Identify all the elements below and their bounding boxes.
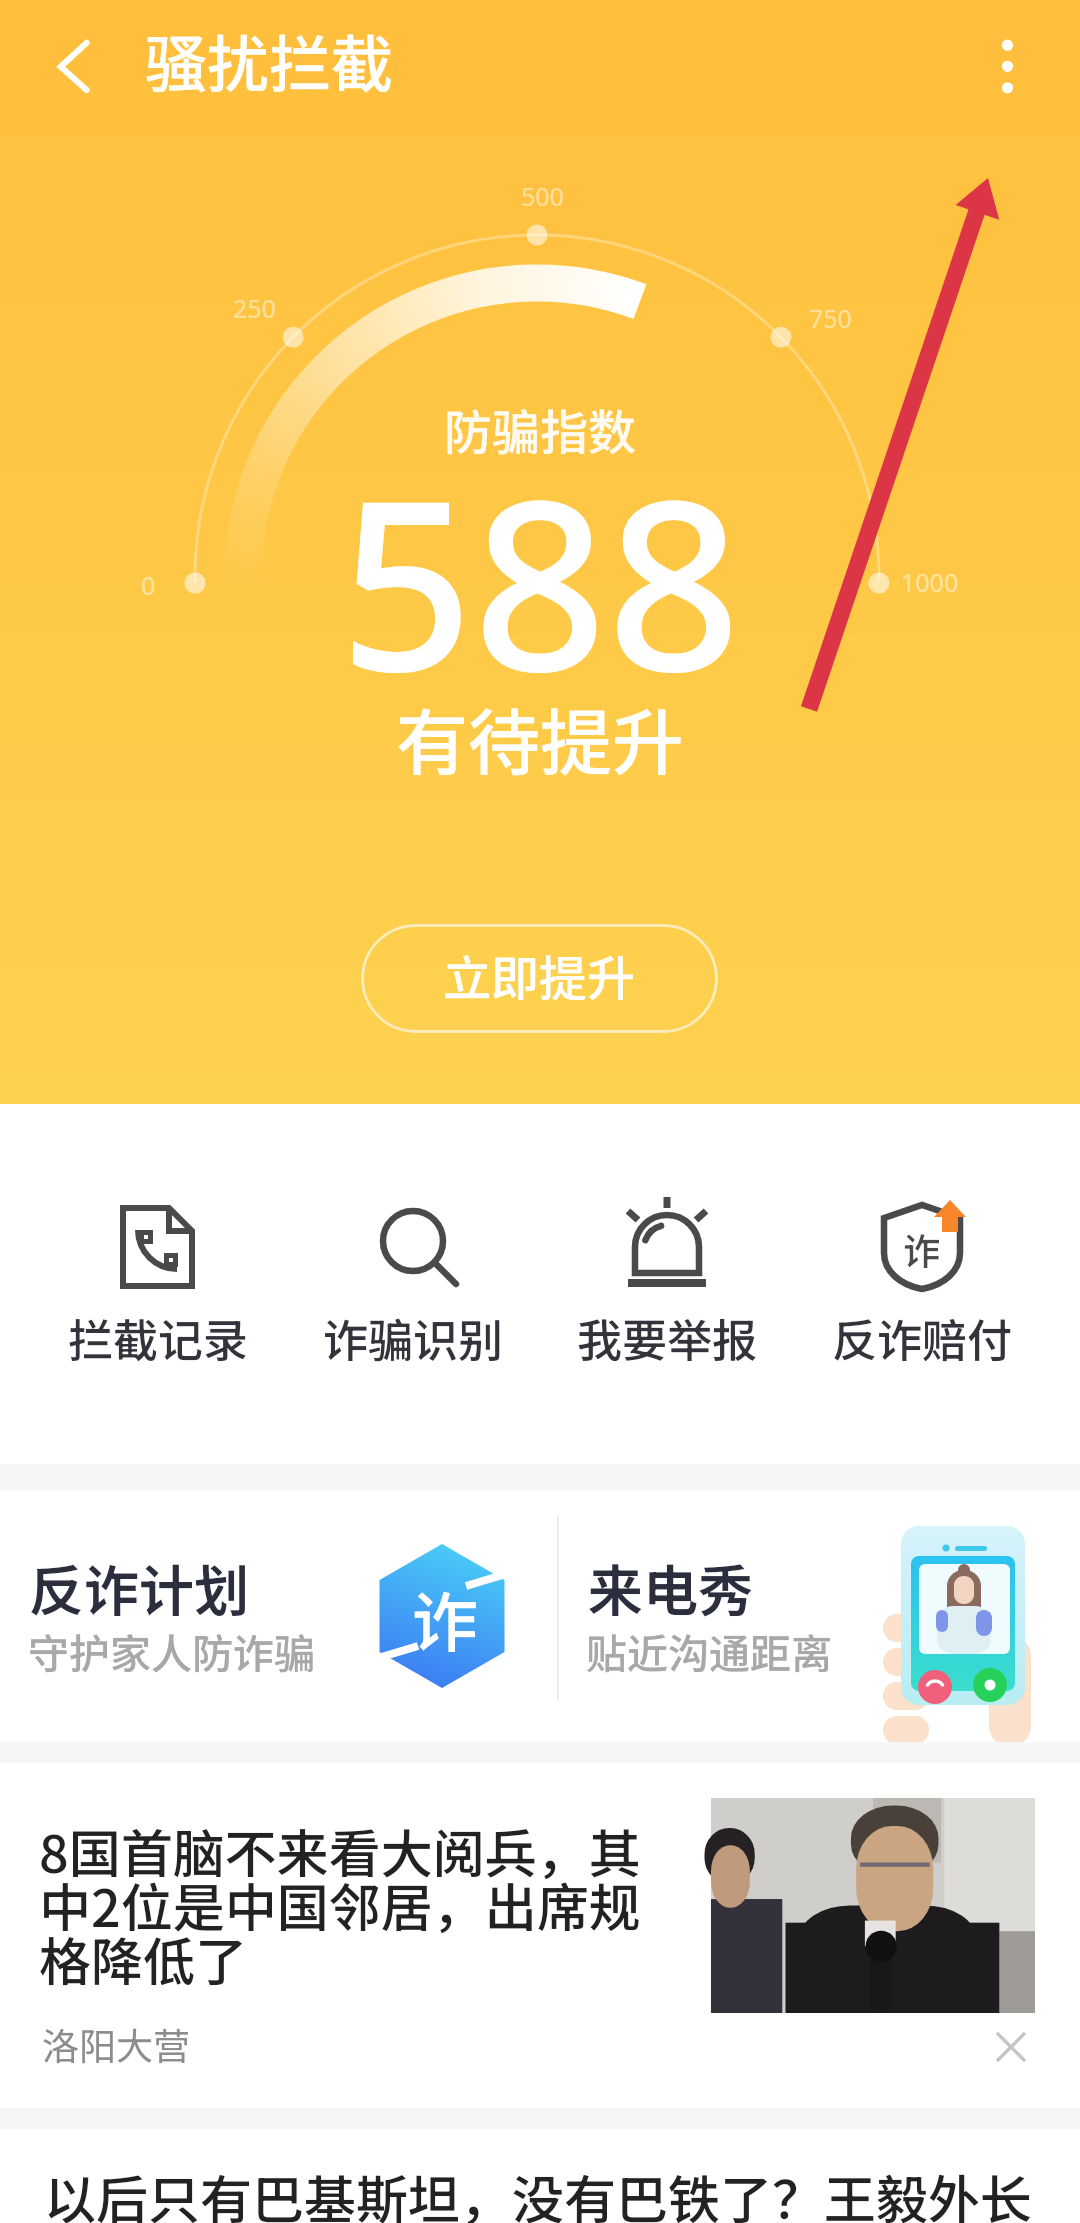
staticText: 反诈赔付 — [795, 1305, 1049, 1370]
button[interactable]: 来电秀 — [558, 1490, 1080, 1742]
staticText: 750 — [809, 301, 852, 335]
staticText: 格降低了 — [39, 1921, 248, 1996]
staticText: 诈骗识别 — [286, 1305, 540, 1370]
staticText: 有待提升 — [0, 685, 1080, 789]
button[interactable]: Close — [975, 2011, 1047, 2083]
button[interactable]: Back — [28, 19, 120, 111]
staticText: 贴近沟通距离 — [586, 1621, 832, 1680]
button[interactable]: 8国首脑不来看大阅兵，其 — [0, 1763, 1080, 2108]
button[interactable]: 诈骗识别 — [286, 1104, 540, 1464]
staticText: 我要举报 — [540, 1305, 794, 1370]
staticText: 中2位是中国邻居，出席规 — [39, 1867, 641, 1942]
staticText: 诈 — [903, 1222, 940, 1276]
button[interactable]: 立即提升 — [361, 924, 718, 1033]
staticText: 反诈计划 — [29, 1547, 250, 1627]
button[interactable]: 拦截记录 — [31, 1104, 285, 1464]
staticText: 500 — [521, 179, 564, 213]
staticText: 来电秀 — [588, 1547, 754, 1627]
staticText: 8国首脑不来看大阅兵，其 — [39, 1813, 641, 1888]
staticText: 250 — [233, 291, 276, 325]
staticText: 守护家人防诈骗 — [28, 1621, 315, 1680]
staticText: 拦截记录 — [31, 1305, 285, 1370]
button[interactable]: 我要举报 — [540, 1104, 794, 1464]
staticText: 骚扰拦截 — [145, 15, 394, 105]
button[interactable]: More options — [961, 19, 1053, 111]
staticText: 以后只有巴基斯坦，没有巴铁了？王毅外长 — [44, 2159, 1033, 2223]
staticText: 洛阳大营 — [42, 2017, 190, 2071]
staticText: 立即提升 — [443, 940, 636, 1010]
staticText: 0 — [141, 568, 156, 602]
button[interactable]: 反诈计划 — [0, 1490, 558, 1742]
button[interactable]: 以后只有巴基斯坦，没有巴铁了？王毅外长 — [0, 2129, 1080, 2223]
staticText: 防骗指数 — [0, 394, 1080, 464]
button[interactable]: 诈 — [795, 1104, 1049, 1464]
staticText: 1000 — [901, 565, 959, 599]
staticText: 588 — [0, 421, 1080, 740]
staticText: 诈 — [412, 1570, 478, 1666]
